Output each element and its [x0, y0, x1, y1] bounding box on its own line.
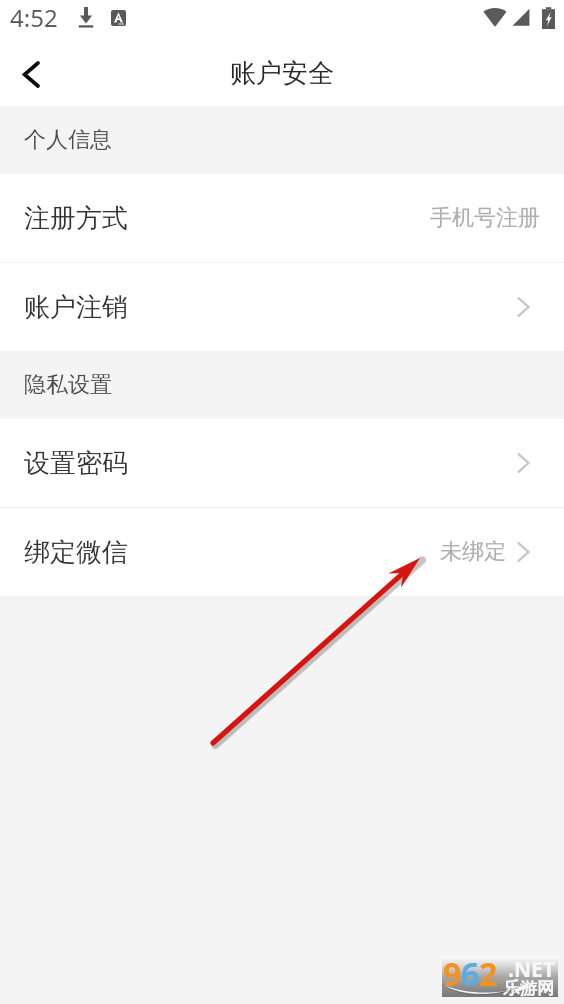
staticText: .NET: [508, 955, 555, 984]
staticText: 未绑定: [440, 538, 506, 566]
staticText: 6: [461, 952, 479, 993]
button[interactable]: 注册方式: [0, 174, 564, 262]
button[interactable]: 设置密码: [0, 419, 564, 507]
button[interactable]: Back: [0, 46, 62, 106]
staticText: 2: [479, 952, 497, 993]
staticText: 注册方式: [24, 202, 128, 235]
staticText: 账户注销: [24, 291, 128, 324]
button[interactable]: 账户注销: [0, 263, 564, 351]
staticText: 9: [443, 952, 461, 993]
staticText: 乐游网: [503, 978, 554, 999]
button[interactable]: 绑定微信: [0, 508, 564, 596]
staticText: 设置密码: [24, 447, 128, 480]
staticText: 账户安全: [230, 57, 334, 90]
staticText: 绑定微信: [24, 536, 128, 569]
staticText: 隐私设置: [24, 371, 112, 399]
staticText: 手机号注册: [430, 204, 540, 232]
staticText: 个人信息: [24, 126, 112, 154]
staticText: 4:52: [10, 1, 58, 34]
